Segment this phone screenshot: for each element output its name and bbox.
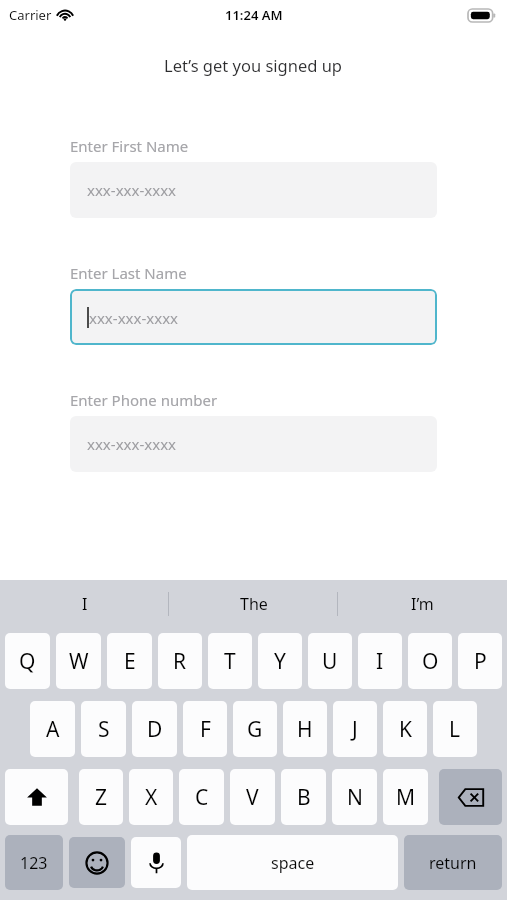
staticText: J [352,715,358,744]
button[interactable]: G [233,701,277,757]
staticText: Enter Last Name [70,263,187,283]
staticText: U [322,647,338,676]
button[interactable]: N [332,769,377,825]
button[interactable]: W [56,633,101,689]
button[interactable]: Shift [5,769,68,825]
staticText: P [474,647,487,676]
staticText: W [69,647,89,676]
button[interactable]: Z [79,769,123,825]
staticText: I [376,647,384,676]
staticText: X [145,783,158,812]
button[interactable]: space [187,835,398,890]
button[interactable]: Backspace [439,769,502,825]
staticText: G [247,715,263,744]
button[interactable]: S [81,701,126,757]
staticText: V [246,783,259,812]
staticText: A [46,715,60,744]
staticText: Enter Phone number [70,390,218,410]
button[interactable]: return [404,835,502,890]
staticText: 123 [20,852,48,874]
staticText: Carrier [9,6,52,24]
staticText: return [429,852,477,874]
button[interactable]: xxx-xxx-xxxx [70,416,437,472]
staticText: M [396,783,416,812]
staticText: E [124,647,136,676]
staticText: Z [95,783,108,812]
staticText: T [224,647,236,676]
staticText: Y [274,647,286,676]
staticText: xxx-xxx-xxxx [89,308,179,328]
button[interactable]: Emoji [69,837,125,888]
staticText: O [422,647,439,676]
staticText: L [449,715,461,744]
staticText: F [200,715,211,744]
button[interactable]: The [169,580,338,627]
button[interactable]: K [383,701,427,757]
button[interactable]: I’m [338,580,507,627]
button[interactable]: A [30,701,75,757]
staticText: I [82,593,88,615]
staticText: C [195,783,209,812]
staticText: K [399,715,412,744]
staticText: xxx-xxx-xxxx [87,434,177,454]
staticText: I’m [411,593,434,615]
staticText: xxx-xxx-xxxx [87,180,177,200]
button[interactable]: F [183,701,227,757]
button[interactable]: L [433,701,477,757]
button[interactable]: R [158,633,202,689]
button[interactable]: X [129,769,173,825]
button[interactable]: D [132,701,177,757]
button[interactable]: T [208,633,252,689]
staticText: S [98,715,110,744]
staticText: N [347,783,363,812]
button[interactable]: I [0,580,169,627]
button[interactable]: J [333,701,377,757]
staticText: Enter First Name [70,136,189,156]
button[interactable]: Dictate [131,837,181,888]
button[interactable]: B [281,769,326,825]
button[interactable]: O [408,633,452,689]
button[interactable]: C [179,769,224,825]
staticText: space [271,852,315,874]
staticText: B [297,783,311,812]
button[interactable]: Q [5,633,50,689]
button[interactable]: H [283,701,327,757]
button[interactable]: xxx-xxx-xxxx [70,162,437,218]
staticText: 11:24 AM [225,6,283,24]
button[interactable]: 123 [5,835,63,890]
button[interactable]: P [458,633,502,689]
button[interactable]: Y [258,633,302,689]
button[interactable]: xxx-xxx-xxxx [70,289,437,345]
staticText: Q [19,647,36,676]
button[interactable]: U [308,633,352,689]
staticText: R [173,647,187,676]
button[interactable]: E [107,633,152,689]
button[interactable]: V [230,769,275,825]
staticText: D [147,715,163,744]
button[interactable]: I [358,633,402,689]
staticText: Let’s get you signed up [164,54,343,76]
button[interactable]: M [383,769,428,825]
staticText: H [297,715,313,744]
staticText: The [240,593,268,615]
